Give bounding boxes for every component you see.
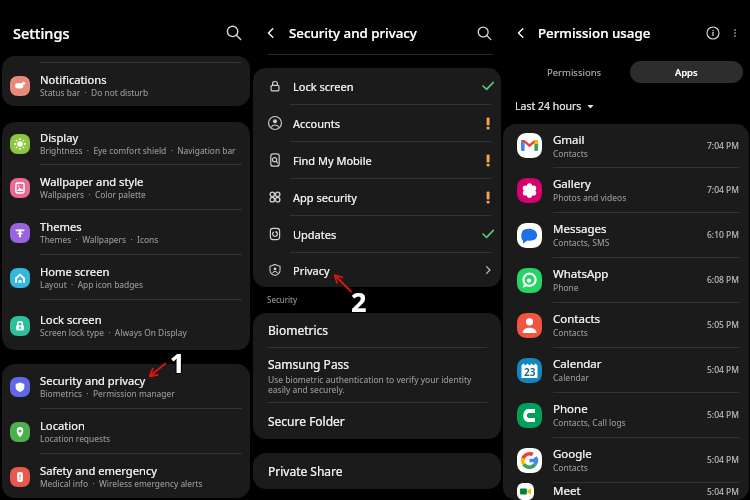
button[interactable]: Themes xyxy=(2,210,250,254)
staticText: 2 xyxy=(350,283,366,320)
button[interactable]: Search xyxy=(224,23,244,43)
staticText: Status bar · Do not disturb xyxy=(40,87,149,98)
staticText: 5:04 PM xyxy=(707,454,739,466)
button[interactable]: Location xyxy=(2,409,250,453)
staticText: Location xyxy=(40,418,85,433)
button[interactable]: Back xyxy=(262,24,280,42)
staticText: Updates xyxy=(293,227,481,242)
staticText: Security and privacy xyxy=(40,373,146,388)
staticText: Find My Mobile xyxy=(293,153,481,168)
staticText: 1 xyxy=(171,344,186,379)
staticText: Contacts, Call logs xyxy=(553,417,626,429)
staticText: Medical info · Wireless emergency alerts xyxy=(40,478,203,489)
button[interactable]: Phone xyxy=(503,393,749,437)
staticText: WhatsApp xyxy=(553,266,609,282)
button[interactable]: Display xyxy=(2,122,250,164)
button[interactable]: Messages xyxy=(503,213,749,257)
button[interactable]: Last 24 hours xyxy=(515,99,594,113)
staticText: 23 xyxy=(524,365,536,379)
button[interactable]: Notifications xyxy=(2,63,250,106)
button[interactable]: Accounts xyxy=(253,105,501,141)
staticText: Messages xyxy=(553,221,607,237)
staticText: 2 xyxy=(351,283,367,320)
staticText: Home screen xyxy=(40,264,110,279)
button[interactable]: Lock screen xyxy=(253,68,501,104)
staticText: 7:04 PM xyxy=(707,140,739,152)
staticText: Security xyxy=(267,294,298,305)
button[interactable]: Security and privacy xyxy=(2,364,250,408)
staticText: Biometrics · Permission manager xyxy=(40,388,175,399)
staticText: 2 xyxy=(350,284,366,321)
staticText: 1 xyxy=(169,345,184,380)
staticText: Contacts xyxy=(553,327,588,339)
staticText: Gmail xyxy=(553,132,585,148)
button[interactable]: Privacy xyxy=(253,253,501,287)
button[interactable]: Samsung Pass xyxy=(253,348,501,402)
button[interactable]: Safety and emergency xyxy=(2,454,250,498)
button[interactable]: App security xyxy=(253,179,501,215)
staticText: Calendar xyxy=(553,372,589,384)
staticText: Layout · App icon badges xyxy=(40,279,144,290)
staticText: Phone xyxy=(553,401,588,417)
button[interactable]: Meet xyxy=(503,483,749,500)
staticText: 2 xyxy=(352,284,368,321)
button[interactable]: 23 xyxy=(503,348,749,392)
button[interactable]: Lock screen xyxy=(2,300,250,350)
staticText: Display xyxy=(40,130,79,145)
button[interactable]: Contacts xyxy=(503,303,749,347)
staticText: 1 xyxy=(170,344,185,379)
staticText: Contacts xyxy=(553,311,601,327)
button[interactable]: More options xyxy=(726,24,744,42)
staticText: Last 24 hours xyxy=(515,99,582,113)
staticText: Meet xyxy=(553,483,581,499)
staticText: Notifications xyxy=(40,72,107,87)
staticText: 1 xyxy=(169,344,184,379)
button[interactable]: Apps xyxy=(630,61,743,83)
button[interactable]: Private Share xyxy=(253,453,501,489)
button[interactable]: Gallery xyxy=(503,168,749,212)
staticText: Wallpapers · Color palette xyxy=(40,189,146,200)
staticText: 2 xyxy=(351,284,367,321)
button[interactable]: Secure Folder xyxy=(253,403,501,439)
staticText: 1 xyxy=(171,346,186,381)
staticText: Settings xyxy=(13,23,70,43)
staticText: Brightness · Eye comfort shield · Naviga… xyxy=(40,145,236,156)
staticText: 5:04 PM xyxy=(707,409,739,421)
button[interactable]: Biometrics xyxy=(253,313,501,347)
button[interactable]: Back xyxy=(512,24,530,42)
button[interactable]: Find My Mobile xyxy=(253,142,501,178)
staticText: Lock screen xyxy=(293,79,481,94)
staticText: Contacts xyxy=(553,462,588,474)
button[interactable]: Home screen xyxy=(2,255,250,299)
staticText: Google xyxy=(553,446,592,462)
button[interactable]: Permissions xyxy=(518,61,630,83)
staticText: Calendar xyxy=(553,356,602,372)
staticText: Safety and emergency xyxy=(40,463,157,478)
staticText: Permissions xyxy=(547,66,602,79)
staticText: 5:04 PM xyxy=(707,486,739,498)
staticText: Accounts xyxy=(293,116,481,131)
staticText: 1 xyxy=(170,345,185,380)
button[interactable]: WhatsApp xyxy=(503,258,749,302)
staticText: 1 xyxy=(171,345,186,380)
button[interactable]: Info xyxy=(703,23,723,43)
staticText: Photos and videos xyxy=(553,192,627,204)
button[interactable]: Updates xyxy=(253,216,501,252)
button[interactable]: Search xyxy=(475,24,494,43)
staticText: Security and privacy xyxy=(289,24,417,42)
staticText: Private Share xyxy=(268,463,343,479)
staticText: Themes · Wallpapers · Icons xyxy=(40,234,159,245)
staticText: 1 xyxy=(169,346,184,381)
staticText: 6:10 PM xyxy=(707,229,739,241)
staticText: Contacts, SMS xyxy=(553,237,610,249)
staticText: 7:04 PM xyxy=(707,184,739,196)
button[interactable]: Google xyxy=(503,438,749,482)
staticText: Secure Folder xyxy=(268,413,345,429)
staticText: Biometrics xyxy=(268,322,329,338)
staticText: Screen lock type · Always On Display xyxy=(40,327,187,338)
button[interactable]: Wallpaper and style xyxy=(2,165,250,209)
staticText: 5:05 PM xyxy=(707,319,739,331)
staticText: 5:04 PM xyxy=(707,364,739,376)
button[interactable]: Gmail xyxy=(503,124,749,167)
staticText: 6:08 PM xyxy=(707,274,739,286)
